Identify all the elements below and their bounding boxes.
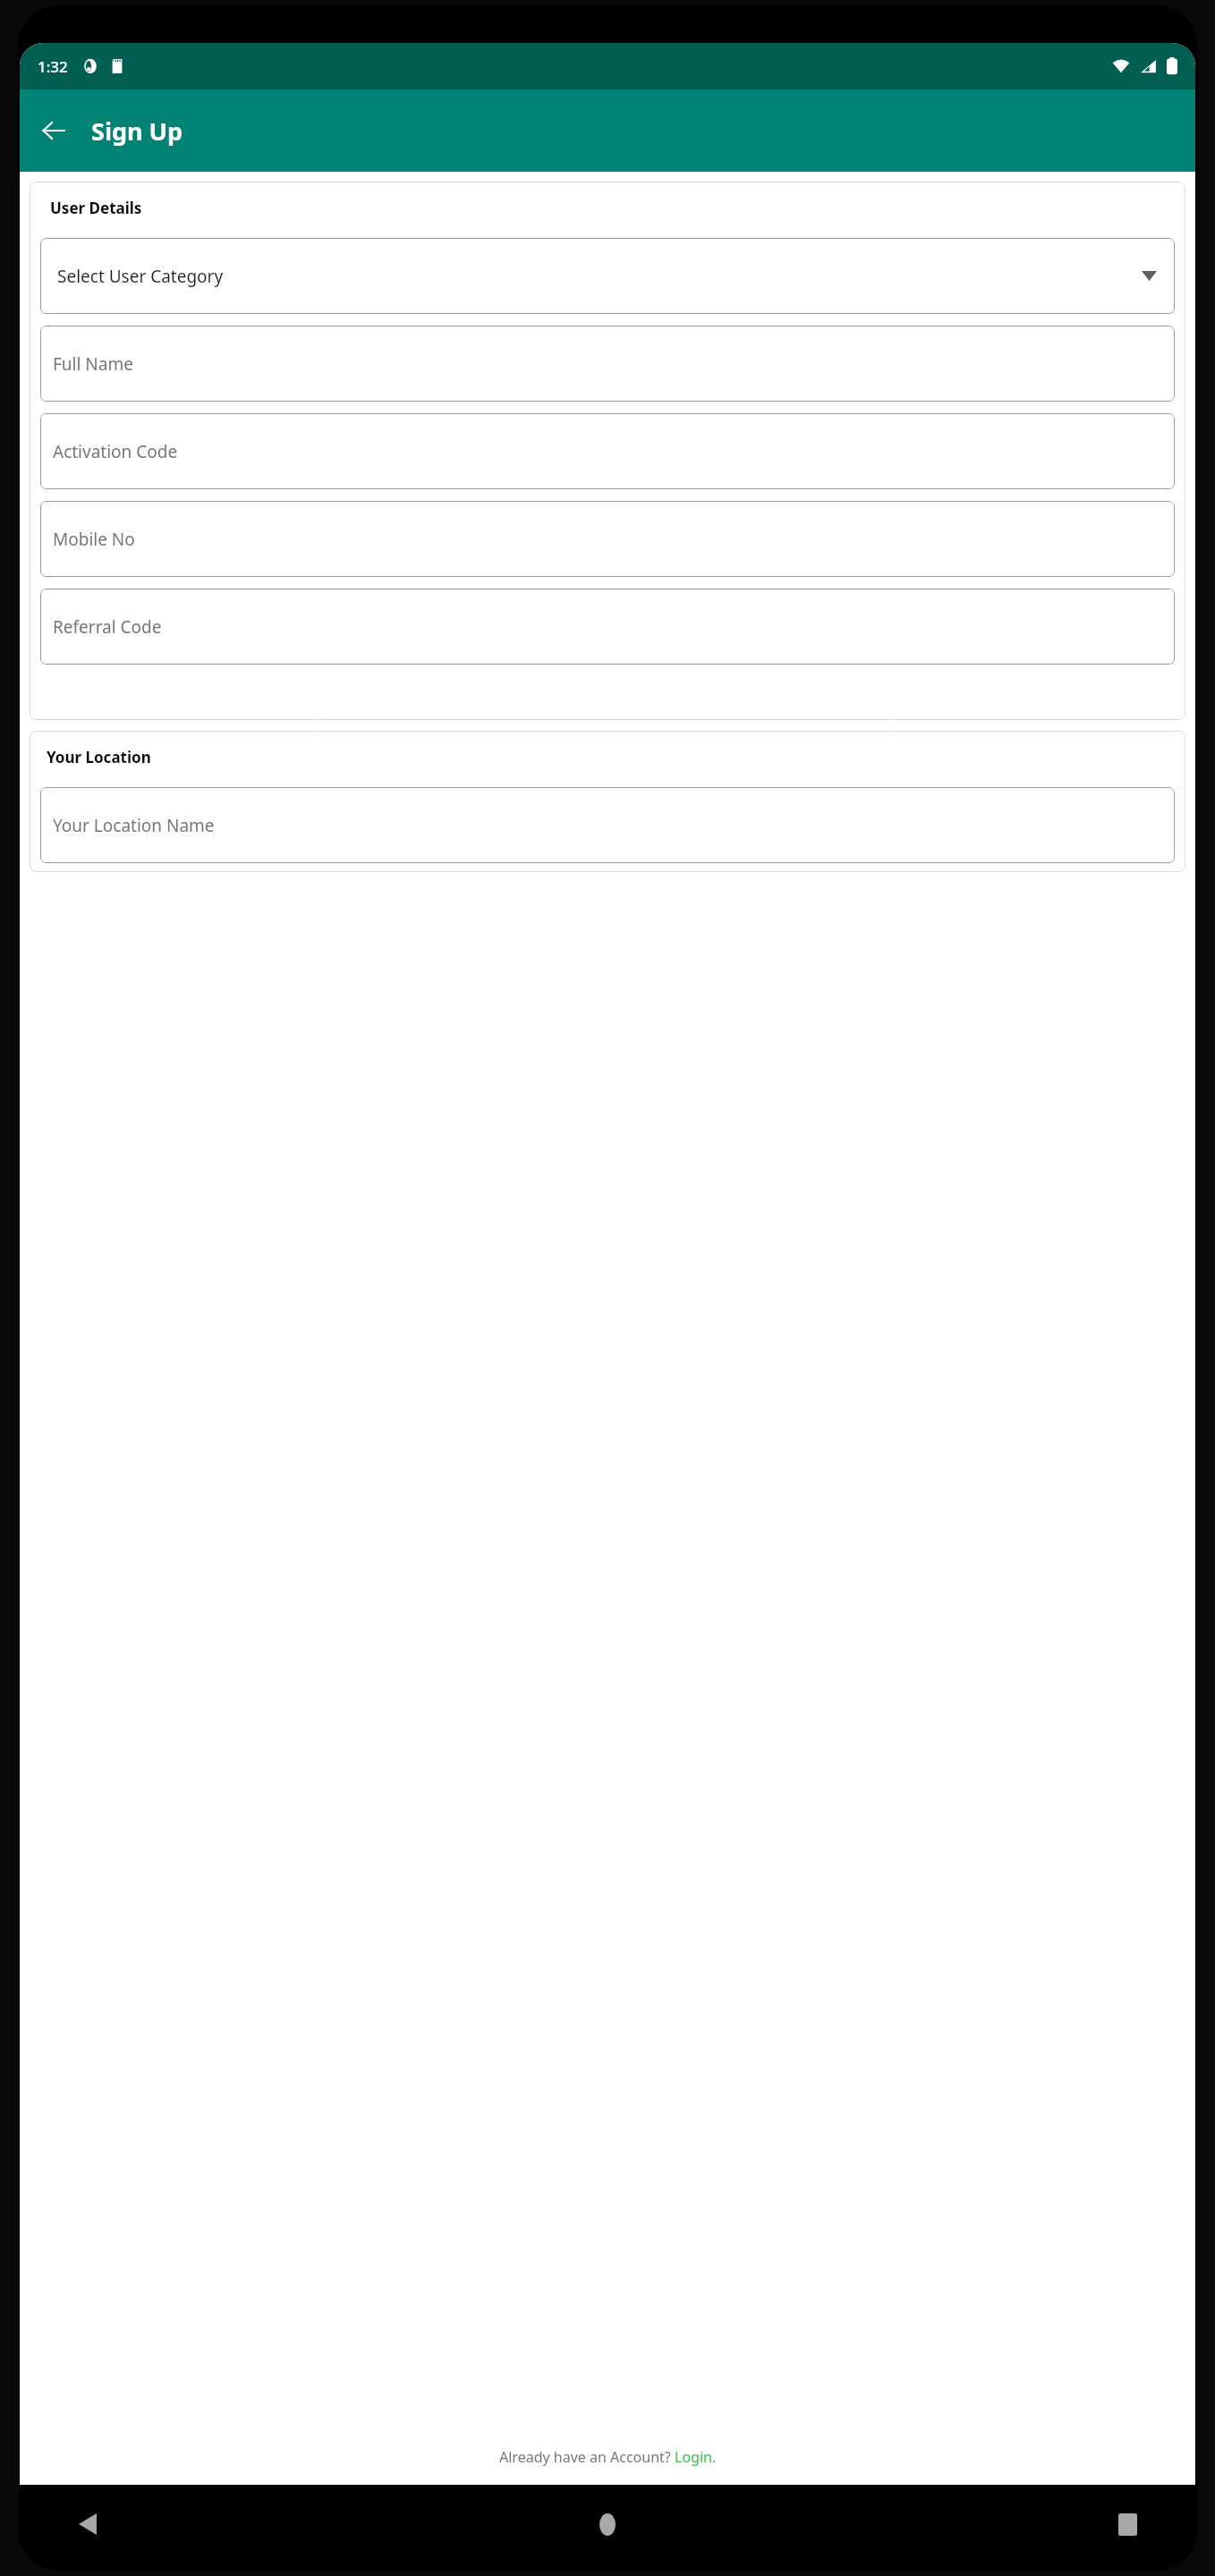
staticText: Sign Up (91, 114, 183, 148)
button[interactable]: Activation Code (40, 413, 1175, 489)
button[interactable]: Recent apps (1104, 2501, 1151, 2547)
button[interactable]: Full Name (40, 326, 1175, 402)
button[interactable]: Already have an Account? (30, 2438, 1185, 2476)
staticText: Select User Category (57, 265, 224, 288)
staticText: Your Location Name (53, 814, 215, 837)
staticText: Login. (675, 2447, 717, 2467)
button[interactable]: Your Location Name (40, 787, 1175, 863)
staticText: Full Name (53, 352, 133, 376)
staticText: Your Location (47, 747, 151, 767)
staticText: 1:32 (38, 56, 68, 77)
staticText: Mobile No (53, 528, 135, 551)
button[interactable]: Back (29, 106, 79, 156)
staticText: User Details (50, 198, 142, 218)
staticText: Activation Code (53, 440, 178, 463)
staticText: Already have an Account? (499, 2447, 675, 2467)
staticText: Referral Code (53, 615, 162, 639)
button[interactable]: Referral Code (40, 589, 1175, 665)
button[interactable]: Home (584, 2501, 631, 2547)
button[interactable]: Select User Category (40, 238, 1175, 314)
button[interactable]: Back (64, 2501, 111, 2547)
button[interactable]: Mobile No (40, 501, 1175, 577)
